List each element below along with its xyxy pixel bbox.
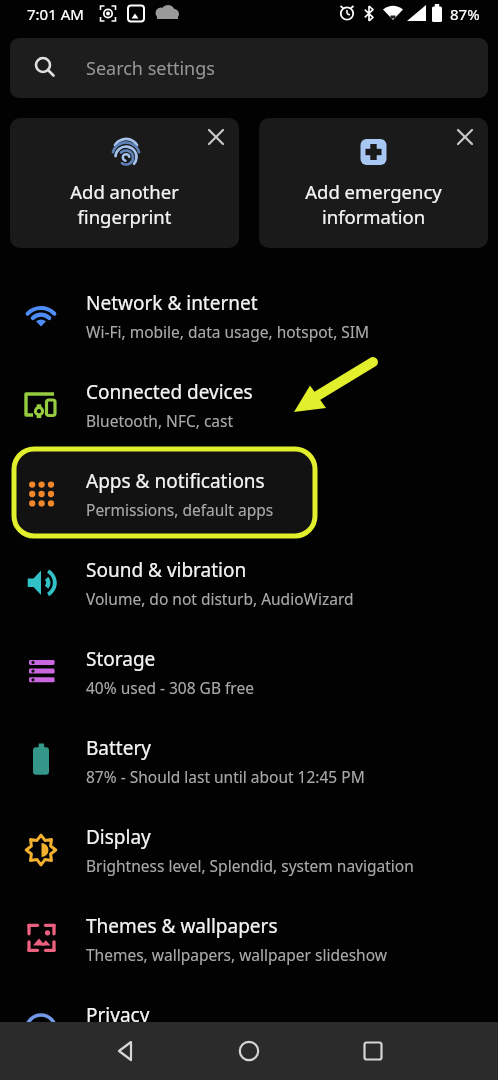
button[interactable]: [332, 1022, 498, 1080]
staticText: 87% - Should last until about 12:45 PM: [86, 766, 365, 787]
staticText: Search settings: [86, 56, 215, 81]
staticText: Add another fingerprint: [70, 179, 179, 229]
staticText: Storage: [86, 646, 156, 672]
staticText: Permissions, default apps: [86, 499, 274, 520]
button[interactable]: Storage: [0, 627, 498, 716]
button[interactable]: Battery: [0, 716, 498, 805]
staticText: 87%: [450, 4, 480, 24]
button[interactable]: Themes & wallpapers: [0, 894, 498, 983]
staticText: Apps & notifications: [86, 468, 265, 494]
staticText: 7:01 AM: [27, 4, 84, 24]
button[interactable]: Connected devices: [0, 360, 498, 449]
staticText: Themes & wallpapers: [86, 913, 278, 939]
button[interactable]: [0, 1022, 166, 1080]
staticText: Battery: [86, 735, 151, 761]
staticText: Brightness level, Splendid, system navig…: [86, 855, 414, 876]
staticText: Wi-Fi, mobile, data usage, hotspot, SIM: [86, 321, 370, 342]
button[interactable]: Add emergency information: [259, 118, 488, 248]
button[interactable]: Privacy: [0, 983, 498, 1072]
button[interactable]: Apps & notifications: [0, 449, 498, 538]
staticText: Display: [86, 824, 151, 850]
staticText: Volume, do not disturb, AudioWizard: [86, 588, 354, 609]
staticText: Bluetooth, NFC, cast: [86, 410, 234, 431]
button[interactable]: Network & internet: [0, 271, 498, 360]
button[interactable]: [166, 1022, 332, 1080]
button[interactable]: Display: [0, 805, 498, 894]
staticText: Sound & vibration: [86, 557, 247, 583]
staticText: Privacy: [86, 1002, 150, 1028]
staticText: Network & internet: [86, 290, 258, 316]
button[interactable]: Add another fingerprint: [10, 118, 239, 248]
button[interactable]: Sound & vibration: [0, 538, 498, 627]
button[interactable]: Search settings: [10, 38, 488, 98]
staticText: Permission manager, account activity: [86, 1033, 356, 1054]
staticText: Themes, wallpapers, wallpaper slideshow: [86, 944, 387, 965]
staticText: Connected devices: [86, 379, 253, 405]
staticText: 40% used - 308 GB free: [86, 677, 254, 698]
staticText: Add emergency information: [305, 179, 442, 229]
